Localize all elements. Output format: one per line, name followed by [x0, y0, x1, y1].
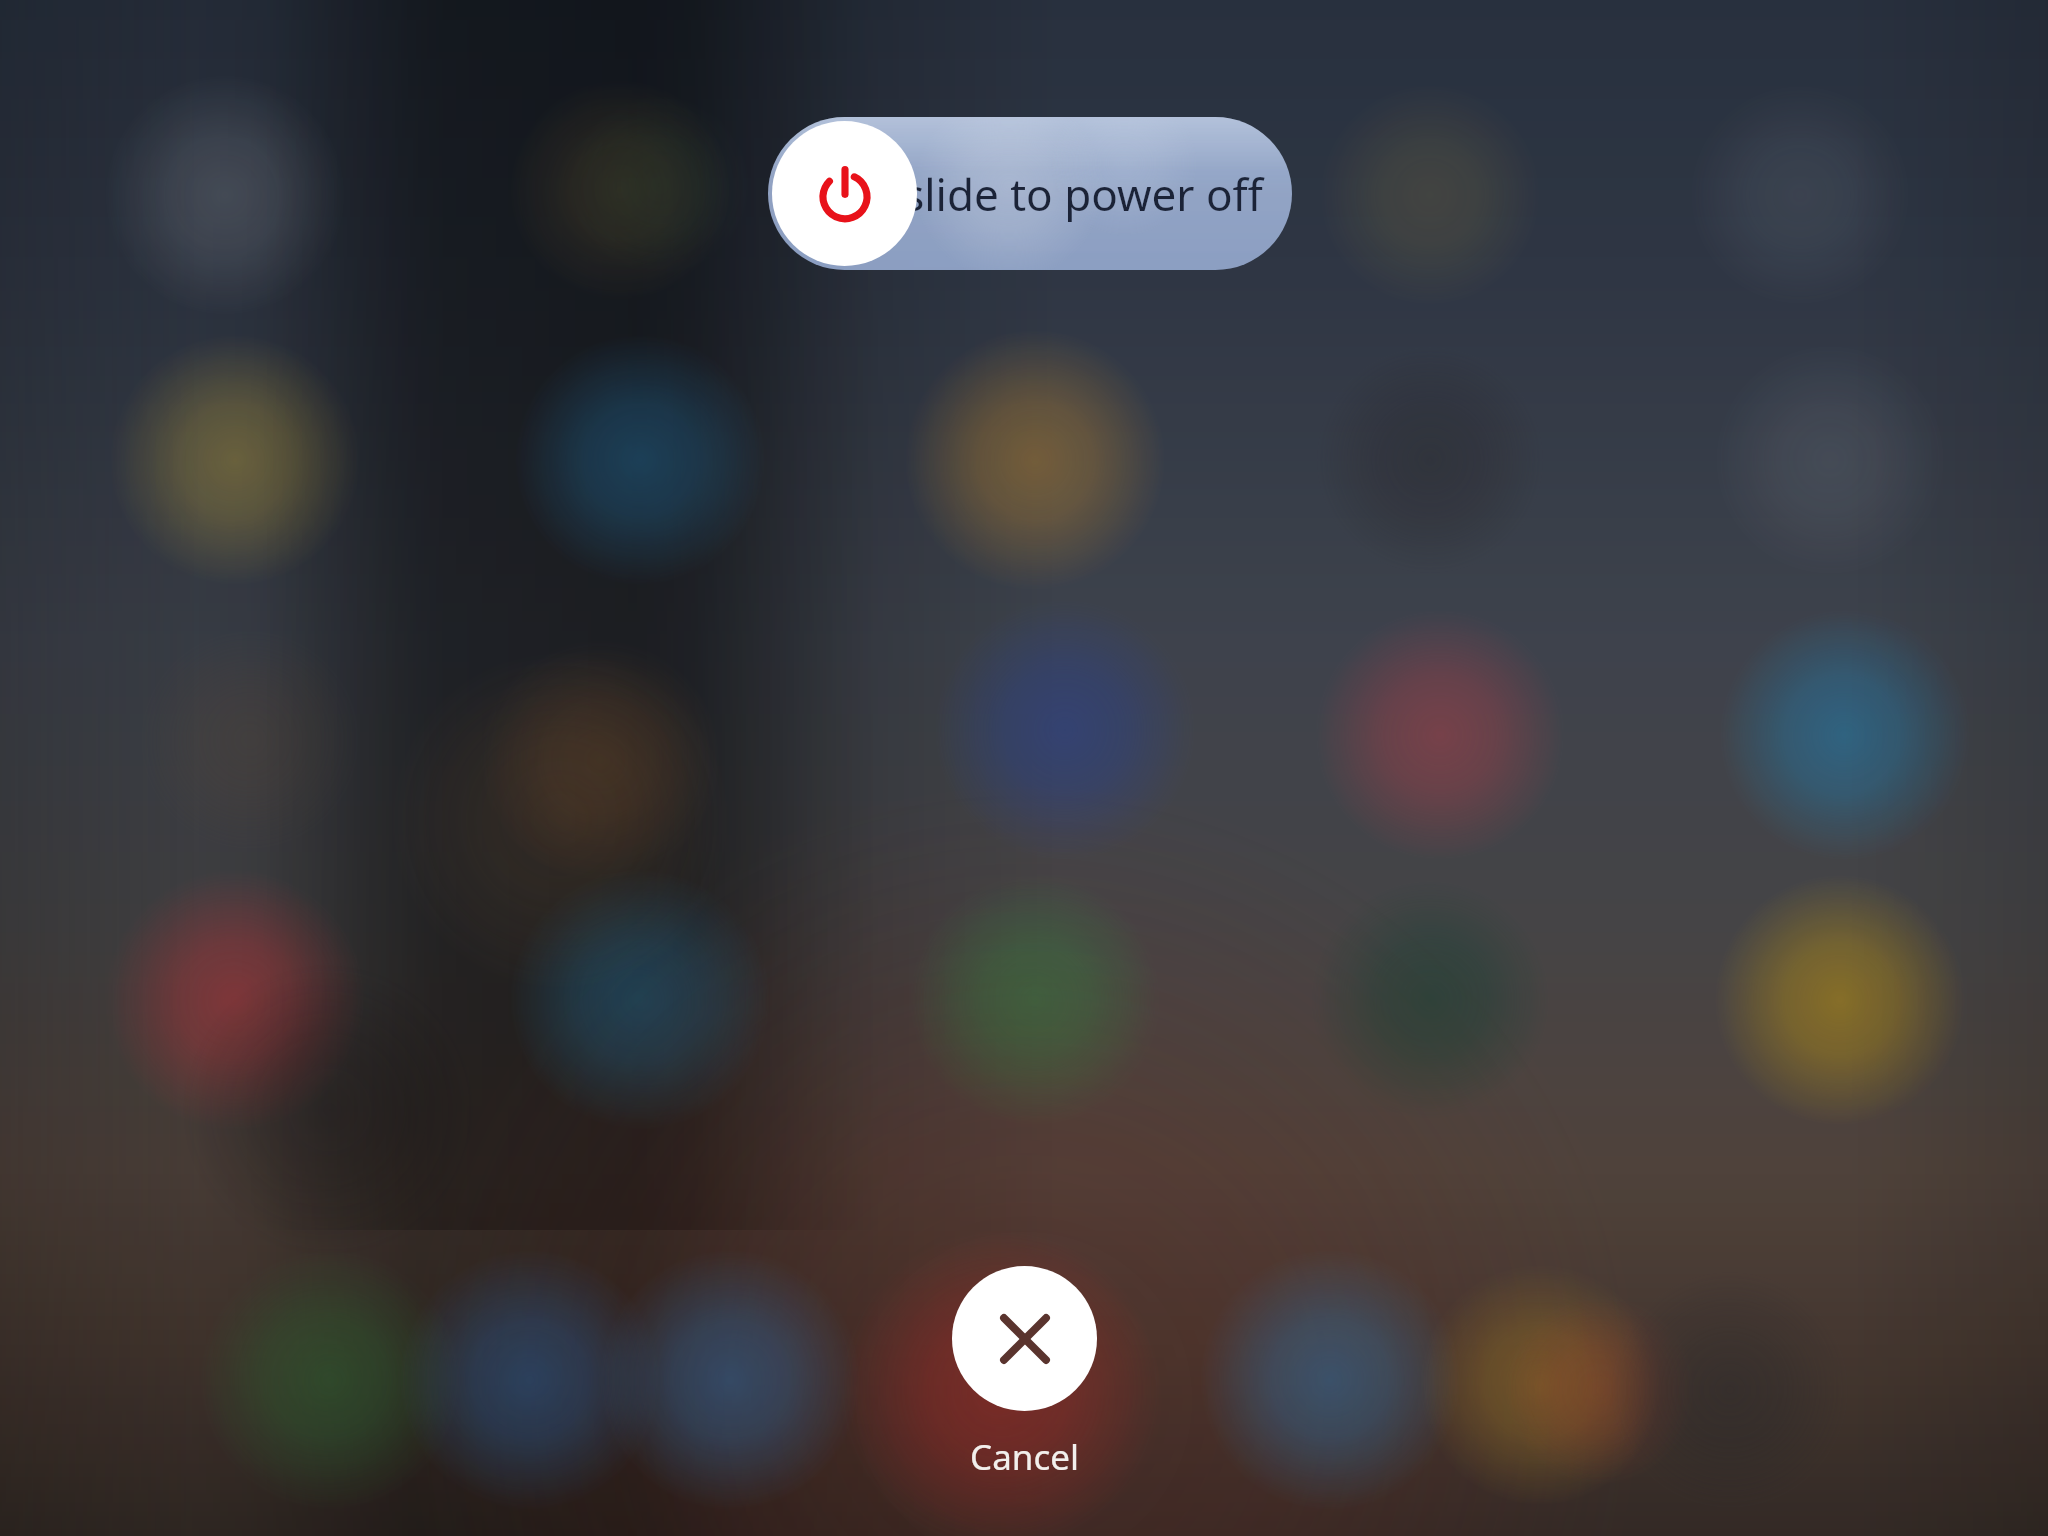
staticText: slide to power off [903, 164, 1263, 224]
other: Cancel [952, 1266, 1097, 1411]
button[interactable]: Slide to power off [772, 121, 917, 266]
button[interactable]: slide to power off [768, 117, 1292, 270]
button[interactable]: Cancel [912, 1266, 1136, 1481]
staticText: Cancel [970, 1433, 1079, 1481]
